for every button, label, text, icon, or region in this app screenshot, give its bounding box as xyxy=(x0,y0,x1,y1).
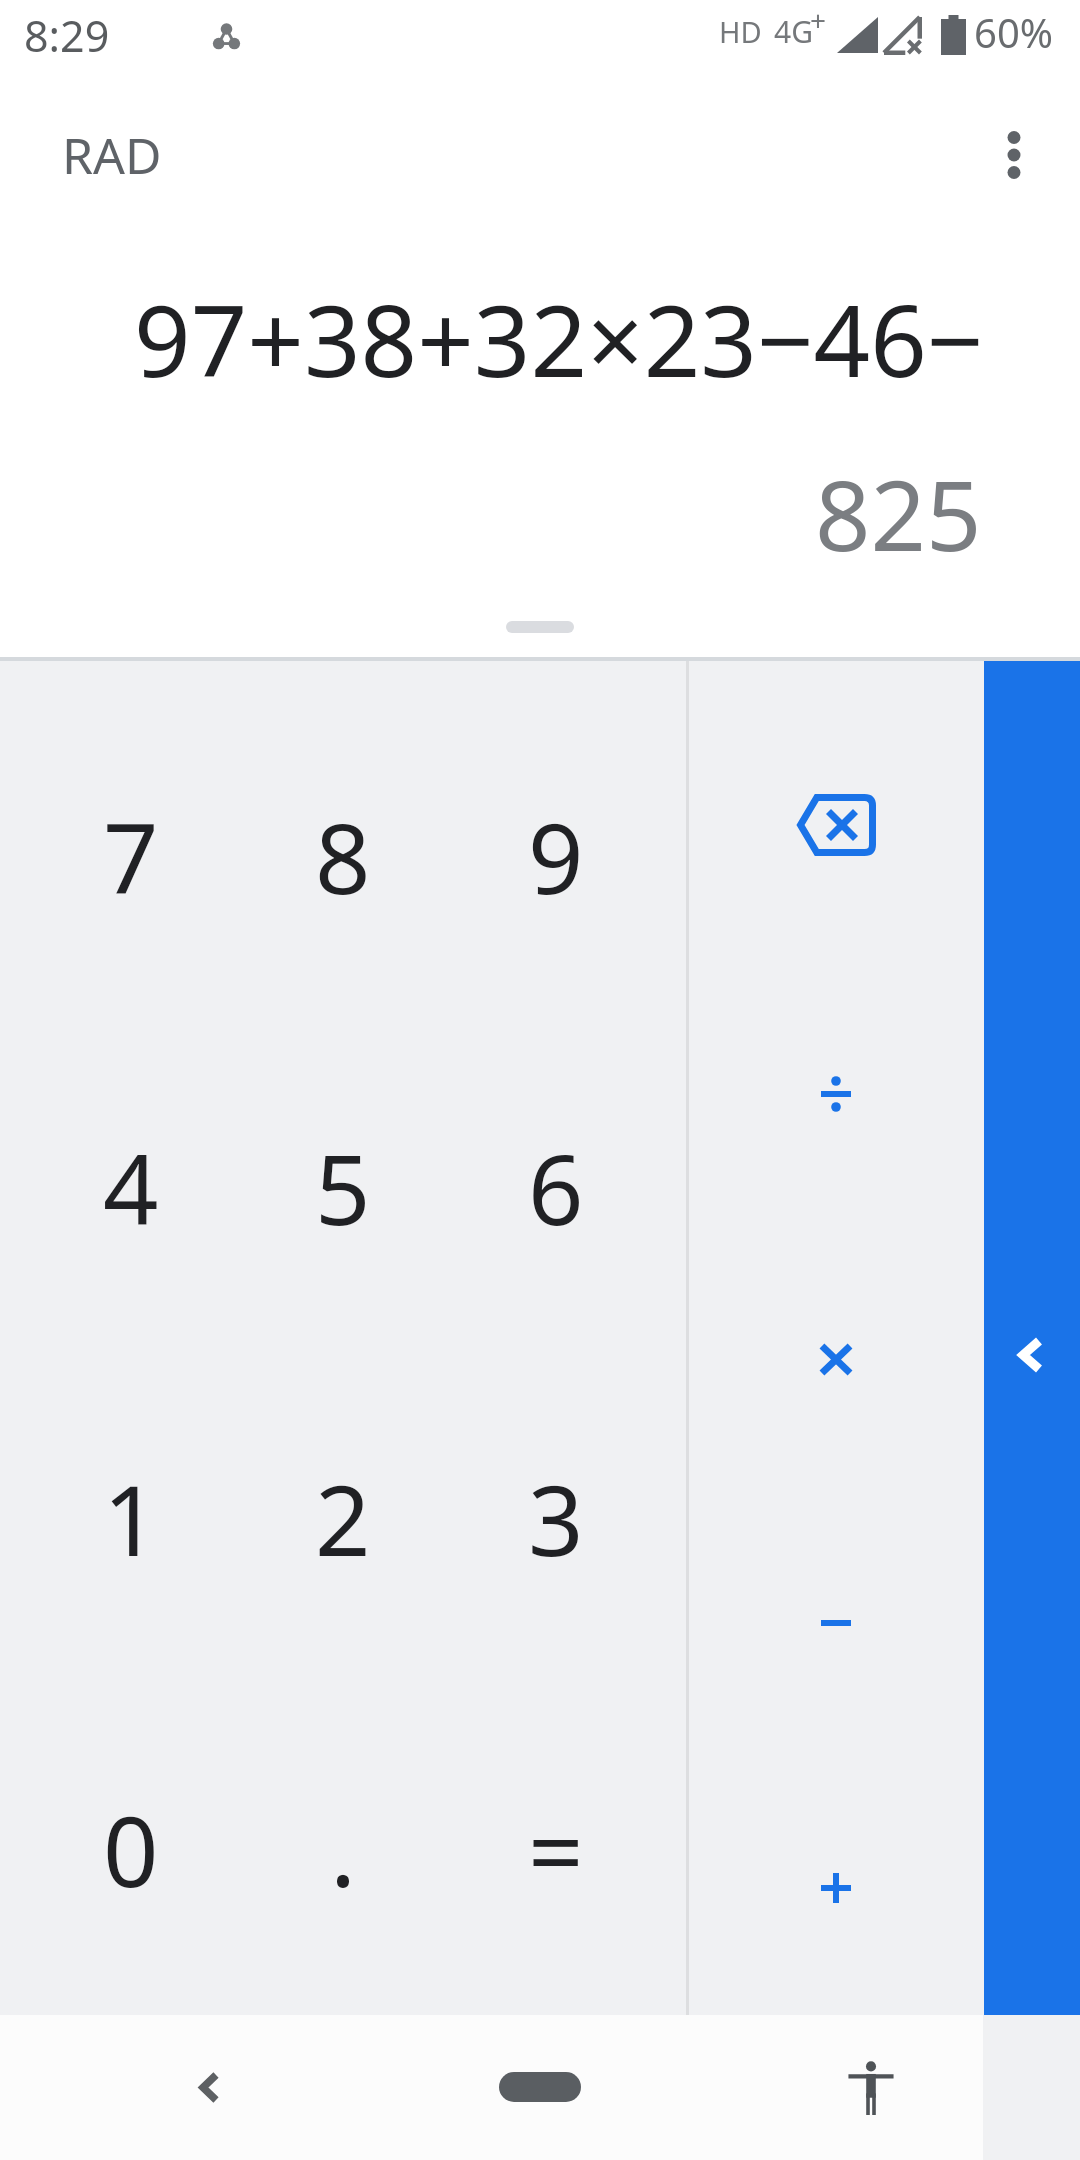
button[interactable]: Multiply xyxy=(689,1227,983,1491)
button[interactable]: 6 xyxy=(450,1021,662,1352)
button[interactable]: Show advanced pad xyxy=(984,657,1080,2015)
staticText: 3 xyxy=(528,1452,584,1584)
staticText: 60% xyxy=(974,5,1053,59)
button[interactable]: 8 xyxy=(237,690,449,1021)
button[interactable]: Accessibility xyxy=(824,2015,918,2160)
button[interactable]: 4 xyxy=(25,1021,237,1352)
button[interactable]: Backspace xyxy=(689,693,983,957)
staticText: 8:29 xyxy=(24,6,110,65)
button[interactable]: Home xyxy=(480,2015,600,2160)
button[interactable]: More options xyxy=(972,113,1056,197)
staticText: RAD xyxy=(62,121,162,189)
button[interactable]: 9 xyxy=(450,690,662,1021)
button[interactable]: Divide xyxy=(689,962,983,1226)
button[interactable]: 2 xyxy=(237,1352,449,1683)
button[interactable]: 0 xyxy=(25,1683,237,2014)
staticText: 4G xyxy=(774,11,813,52)
staticText: 4 xyxy=(103,1121,159,1253)
button[interactable]: 3 xyxy=(450,1352,662,1683)
button[interactable]: . xyxy=(237,1683,449,2014)
staticText: 1 xyxy=(103,1452,159,1584)
button[interactable]: = xyxy=(450,1683,662,2014)
staticText: 2 xyxy=(315,1452,371,1584)
button[interactable]: Subtract xyxy=(689,1491,983,1755)
button[interactable]: Add xyxy=(689,1756,983,2020)
staticText: 6 xyxy=(528,1121,584,1253)
button[interactable]: RAD xyxy=(24,99,200,211)
staticText: HD xyxy=(719,12,762,51)
staticText: 0 xyxy=(103,1783,159,1915)
staticText: 9 xyxy=(528,790,584,922)
staticText: 825 xyxy=(815,447,982,579)
button[interactable]: Back xyxy=(160,2015,254,2160)
button[interactable]: 7 xyxy=(25,690,237,1021)
staticText: 7 xyxy=(103,790,159,922)
button[interactable]: 5 xyxy=(237,1021,449,1352)
staticText: . xyxy=(330,1783,356,1915)
staticText: 5 xyxy=(315,1121,371,1253)
staticText: 97+38+32×23−46− xyxy=(134,271,984,406)
staticText: 8 xyxy=(315,790,371,922)
staticText: = xyxy=(528,1783,584,1915)
button[interactable]: 1 xyxy=(25,1352,237,1683)
staticText: + xyxy=(810,1,827,39)
